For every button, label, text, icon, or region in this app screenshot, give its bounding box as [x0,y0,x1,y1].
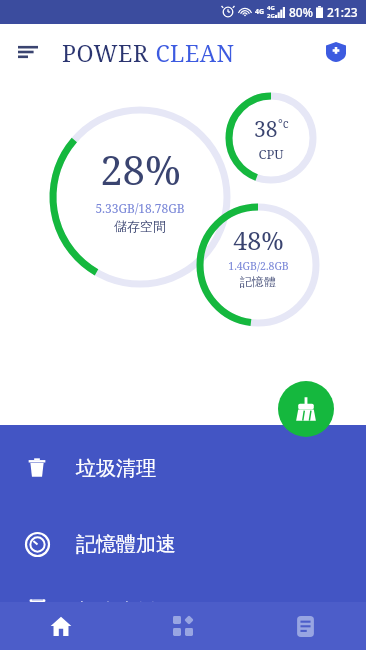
staticText: 4G [267,4,275,12]
staticText: 48% [233,223,284,257]
staticText: 記憶體加速 [76,532,176,557]
staticText: 5.33GB/18.78GB [95,200,185,216]
staticText: 垃圾清理 [76,456,156,481]
staticText: 38 [254,115,278,144]
button[interactable]: 垃圾清理 [0,447,366,489]
staticText: 21:23 [327,4,358,20]
staticText: 28% [100,142,181,196]
staticText: 記憶體 [240,274,276,289]
staticText: 超強省電 [76,599,156,602]
staticText: 儲存空間 [114,218,166,234]
staticText: CLEAN [149,37,235,68]
button[interactable]: Reports [244,602,366,650]
staticText: 4G [255,7,265,17]
staticText: 2G [267,12,275,20]
staticText: °c [278,115,289,131]
button[interactable]: 28% [60,142,220,234]
staticText: POWER [62,37,149,68]
button[interactable]: Clean [278,381,334,437]
button[interactable]: Menu [8,32,48,72]
button[interactable]: Apps [122,602,244,650]
staticText: 80% [289,4,313,20]
button[interactable]: 48% [203,223,313,289]
button[interactable]: Security [318,34,354,70]
button[interactable]: 超強省電 [0,599,366,602]
staticText: CPU [258,145,284,163]
button[interactable]: 38 [231,115,311,163]
button[interactable]: 記憶體加速 [0,523,366,565]
button[interactable]: Home [0,602,122,650]
staticText: 1.4GB/2.8GB [228,259,289,273]
